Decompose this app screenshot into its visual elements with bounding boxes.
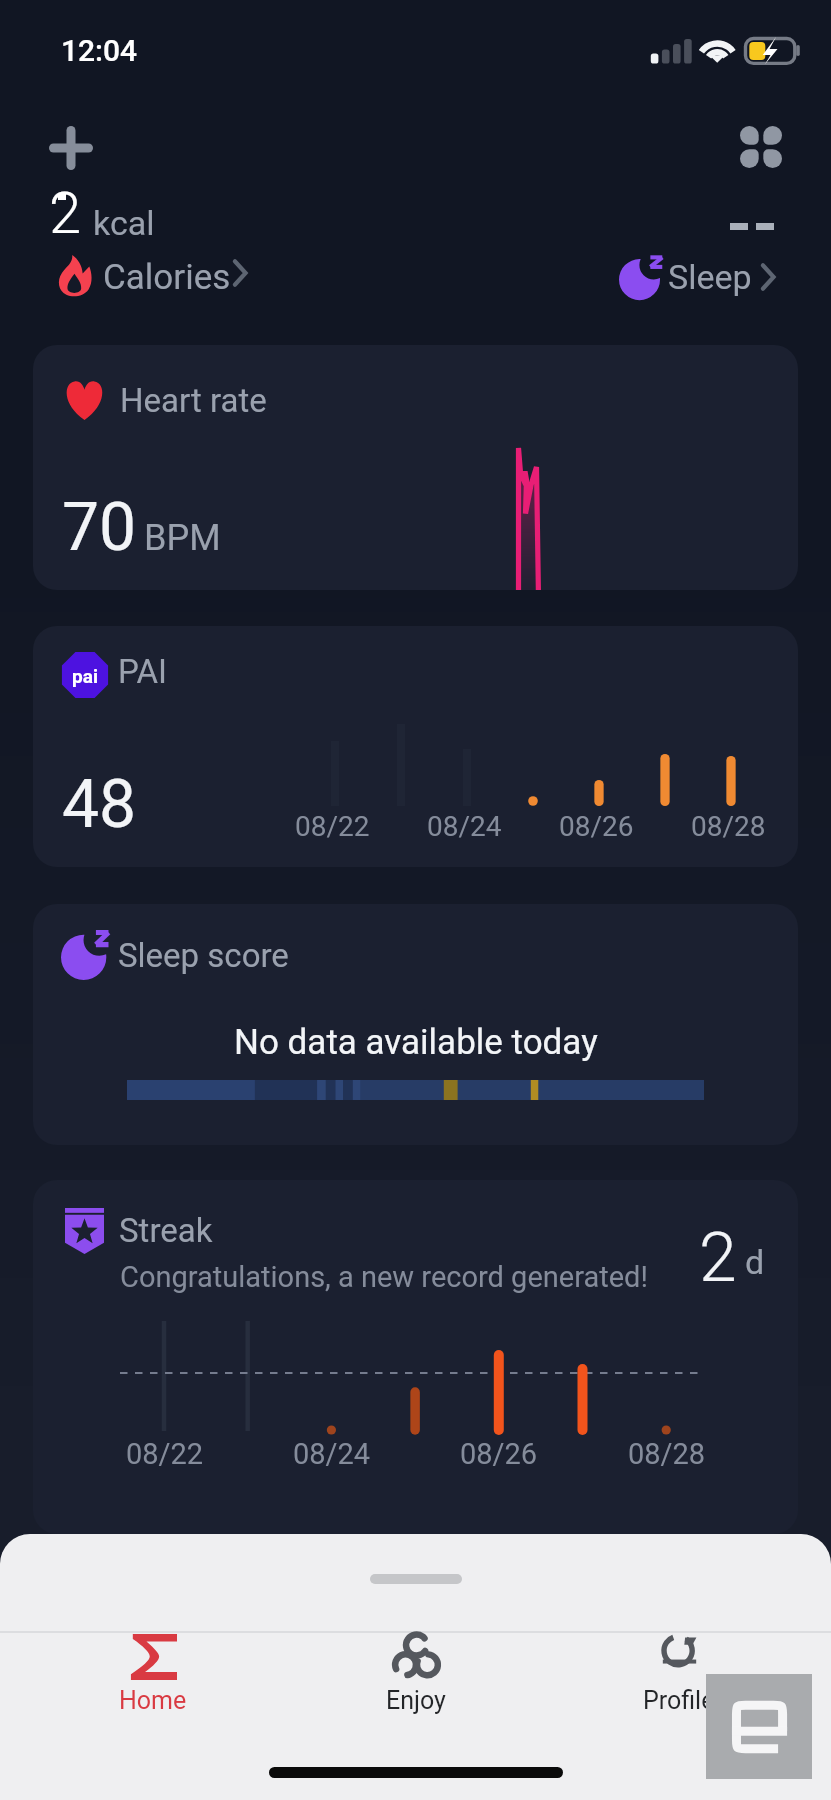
staticText: 2: [49, 179, 82, 247]
staticText: No data available today: [234, 1022, 598, 1063]
staticText: Heart rate: [120, 381, 267, 420]
staticText: Streak: [119, 1211, 213, 1250]
staticText: pai: [72, 665, 98, 687]
button[interactable]: Calories: [56, 254, 256, 298]
staticText: 08/24: [293, 1437, 371, 1471]
staticText: 08/26: [460, 1437, 538, 1471]
button[interactable]: Profile: [599, 1633, 759, 1715]
staticText: Home: [119, 1686, 187, 1715]
staticText: 08/24: [427, 810, 502, 843]
staticText: Enjoy: [386, 1686, 446, 1715]
staticText: BPM: [144, 517, 221, 559]
button[interactable]: pai: [33, 626, 798, 867]
staticText: 2: [699, 1218, 737, 1298]
staticText: kcal: [93, 203, 155, 243]
staticText: Calories: [103, 257, 231, 298]
staticText: 08/28: [628, 1437, 706, 1471]
staticText: Congratulations, a new record generated!: [120, 1260, 648, 1294]
button[interactable]: Enjoy: [336, 1633, 496, 1715]
button[interactable]: Sleep score: [33, 904, 798, 1145]
button[interactable]: Sleep: [619, 255, 779, 297]
staticText: 08/22: [126, 1437, 204, 1471]
button[interactable]: Streak: [33, 1180, 798, 1534]
staticText: Sleep: [668, 257, 752, 297]
staticText: 08/26: [559, 810, 634, 843]
button[interactable]: Heart rate: [33, 345, 798, 590]
staticText: 08/22: [295, 810, 370, 843]
staticText: Profile: [643, 1686, 715, 1715]
staticText: d: [745, 1242, 765, 1282]
staticText: 70: [62, 489, 137, 566]
staticText: 48: [62, 766, 137, 843]
button[interactable]: Add: [42, 119, 100, 177]
button[interactable]: Home: [73, 1633, 233, 1715]
staticText: Sleep score: [118, 936, 289, 975]
button[interactable]: Apps: [732, 118, 790, 176]
staticText: PAI: [118, 652, 168, 691]
staticText: 08/28: [691, 810, 766, 843]
staticText: 12:04: [61, 33, 138, 68]
